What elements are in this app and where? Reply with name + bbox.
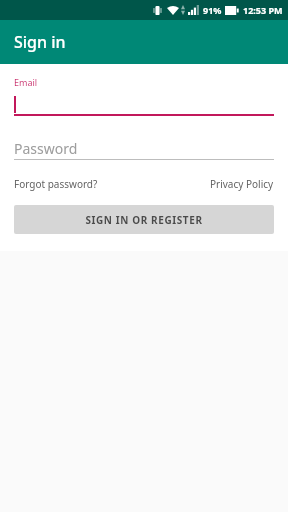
button[interactable] [14, 94, 274, 114]
staticText: Forgot password? [14, 177, 98, 191]
staticText: Sign in [14, 31, 66, 53]
staticText: Password [14, 139, 78, 158]
staticText: SIGN IN OR REGISTER [85, 213, 203, 227]
button[interactable]: Password [14, 137, 274, 159]
staticText: Privacy Policy [210, 177, 274, 191]
button[interactable]: Privacy Policy [210, 177, 274, 191]
button[interactable]: Forgot password? [14, 177, 98, 191]
button[interactable]: SIGN IN OR REGISTER [14, 205, 274, 234]
staticText: 91% [203, 4, 222, 16]
staticText: 12:53 PM [243, 4, 283, 16]
staticText: Email [14, 76, 38, 88]
